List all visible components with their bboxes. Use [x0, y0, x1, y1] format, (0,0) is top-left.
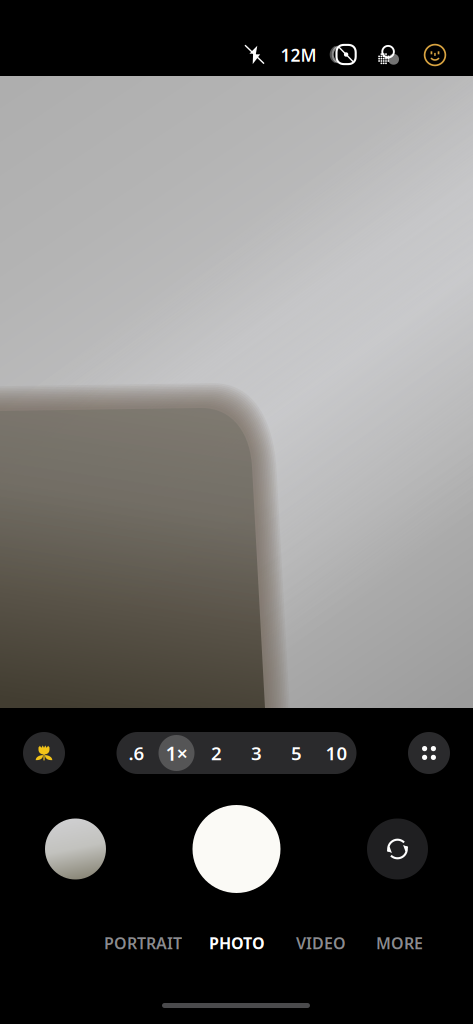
- button[interactable]: Macro: [23, 732, 65, 774]
- staticText: .6: [128, 741, 144, 765]
- staticText: PHOTO: [209, 932, 265, 954]
- staticText: VIDEO: [296, 932, 346, 954]
- staticText: 3: [251, 741, 262, 765]
- button[interactable]: More controls: [408, 732, 450, 774]
- staticText: 10: [325, 741, 347, 765]
- staticText: PORTRAIT: [104, 932, 182, 954]
- staticText: 12M: [280, 43, 316, 66]
- button[interactable]: Flash off: [232, 30, 277, 80]
- button[interactable]: 1×: [156, 732, 196, 774]
- button[interactable]: PORTRAIT: [94, 926, 192, 960]
- button[interactable]: Photo library: [45, 818, 106, 879]
- staticText: 2: [211, 741, 222, 765]
- button[interactable]: Switch camera: [367, 818, 428, 879]
- staticText: MORE: [376, 932, 423, 954]
- button[interactable]: 5: [276, 732, 316, 774]
- button[interactable]: Photographic Styles: [367, 30, 411, 80]
- button[interactable]: 10: [316, 732, 356, 774]
- staticText: 1×: [165, 740, 187, 766]
- button[interactable]: 2: [196, 732, 236, 774]
- button[interactable]: .6: [116, 732, 156, 774]
- button[interactable]: Effects: [411, 30, 459, 80]
- button[interactable]: VIDEO: [282, 926, 360, 960]
- button[interactable]: 3: [236, 732, 276, 774]
- button[interactable]: PHOTO: [192, 926, 282, 960]
- button[interactable]: MORE: [360, 926, 439, 960]
- staticText: 5: [291, 741, 302, 765]
- button[interactable]: Live Photo off: [320, 30, 367, 80]
- button[interactable]: Take photo: [192, 805, 280, 893]
- button[interactable]: 12M: [277, 30, 320, 80]
